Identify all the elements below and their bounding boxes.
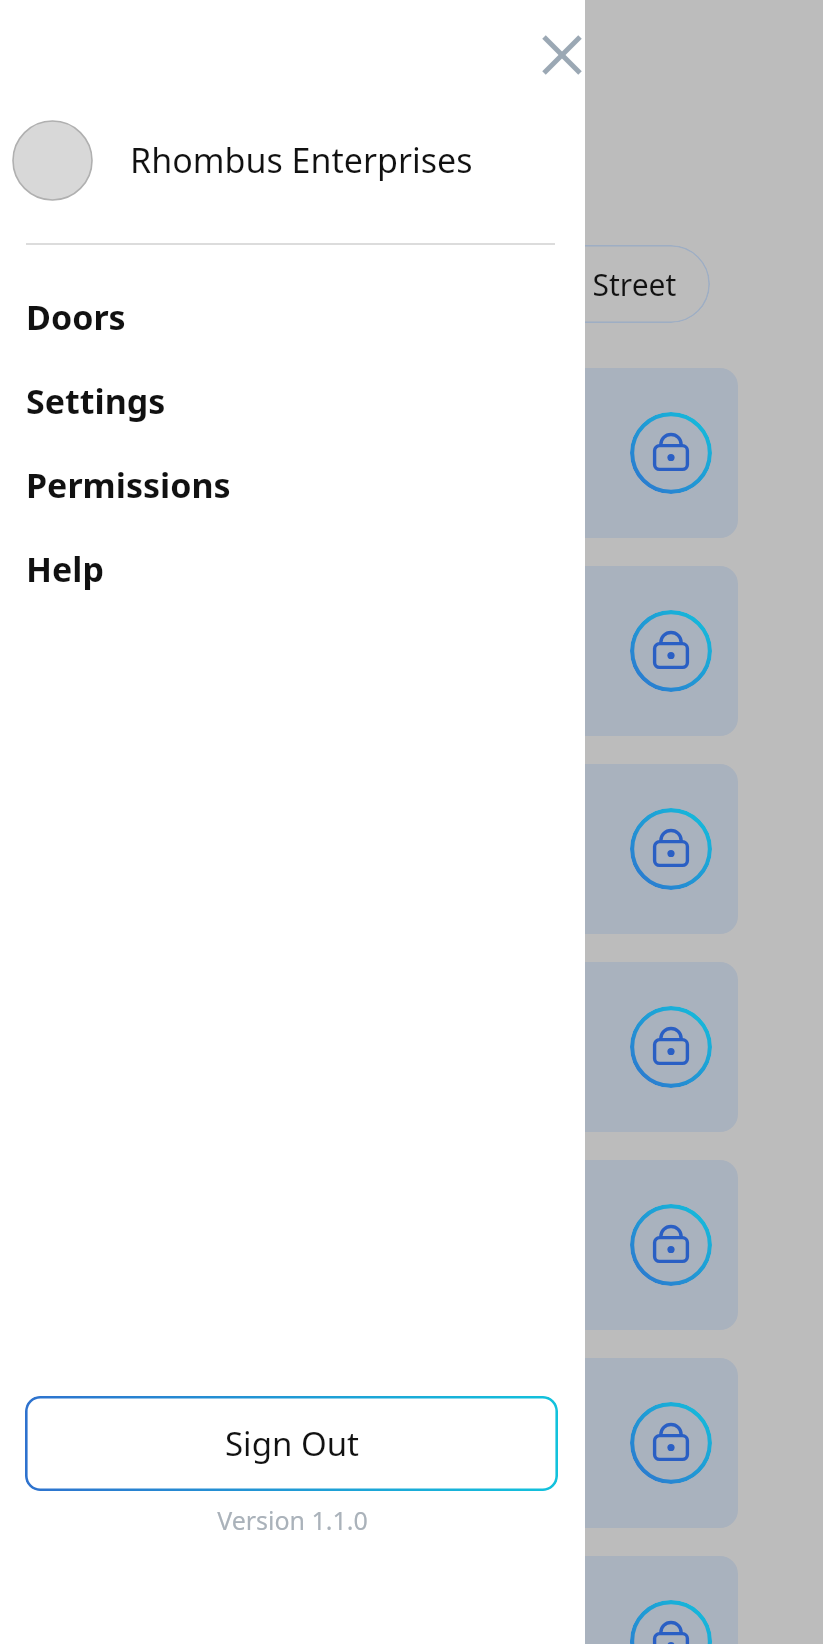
staticText: Doors: [26, 294, 126, 340]
button[interactable]: Doors: [0, 275, 585, 359]
button[interactable]: Door: [452, 1160, 738, 1330]
button[interactable]: Unlock door: [630, 1600, 712, 1644]
button[interactable]: Door: [452, 566, 738, 736]
button[interactable]: Sign Out: [25, 1396, 558, 1491]
staticText: Help: [26, 546, 104, 592]
staticText: 1100 Main Street: [438, 264, 677, 305]
button[interactable]: Unlock door: [630, 1204, 712, 1286]
button[interactable]: Unlock door: [630, 610, 712, 692]
button[interactable]: Unlock door: [630, 1006, 712, 1088]
button[interactable]: Door: [452, 962, 738, 1132]
button[interactable]: Settings: [0, 359, 585, 443]
button[interactable]: Door: [452, 1556, 738, 1644]
button[interactable]: Rhombus Enterprises: [0, 118, 585, 202]
button[interactable]: Door: [452, 1358, 738, 1528]
button[interactable]: Unlock door: [630, 1402, 712, 1484]
button[interactable]: Unlock door: [630, 412, 712, 494]
staticText: Version 1.1.0: [0, 1503, 585, 1537]
button[interactable]: Unlock door: [630, 808, 712, 890]
button[interactable]: Permissions: [0, 443, 585, 527]
button[interactable]: Door: [452, 368, 738, 538]
staticText: Permissions: [26, 462, 231, 508]
button[interactable]: Help: [0, 527, 585, 611]
staticText: Rhombus Enterprises: [130, 137, 473, 183]
button[interactable]: 1100 Main Street: [404, 245, 710, 323]
staticText: Settings: [26, 378, 166, 424]
staticText: Sign Out: [225, 1421, 359, 1466]
button[interactable]: Door: [452, 764, 738, 934]
button[interactable]: Close: [524, 17, 600, 93]
